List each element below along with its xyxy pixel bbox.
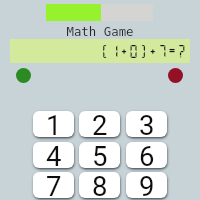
button[interactable]: 4 xyxy=(33,142,74,168)
staticText: (1+0)+7=? xyxy=(100,43,187,58)
staticText: 3 xyxy=(139,111,155,135)
button[interactable]: 6 xyxy=(126,142,167,168)
staticText: 7 xyxy=(46,172,62,196)
button[interactable]: 1 xyxy=(33,111,74,137)
button[interactable]: 3 xyxy=(126,111,167,137)
button[interactable]: 8 xyxy=(79,172,120,198)
staticText: 9 xyxy=(139,172,155,196)
staticText: 6 xyxy=(139,142,155,166)
staticText: 5 xyxy=(92,142,108,166)
button[interactable]: 9 xyxy=(126,172,167,198)
staticText: Math Game xyxy=(0,24,200,38)
staticText: 8 xyxy=(92,172,108,196)
button[interactable]: Wrong answers xyxy=(168,68,183,83)
button[interactable]: Correct answers xyxy=(16,68,31,83)
button[interactable]: 5 xyxy=(79,142,120,168)
staticText: 2 xyxy=(92,111,108,135)
staticText: 4 xyxy=(46,142,62,166)
staticText: 1 xyxy=(46,111,62,135)
button[interactable]: 2 xyxy=(79,111,120,137)
button[interactable]: 7 xyxy=(33,172,74,198)
